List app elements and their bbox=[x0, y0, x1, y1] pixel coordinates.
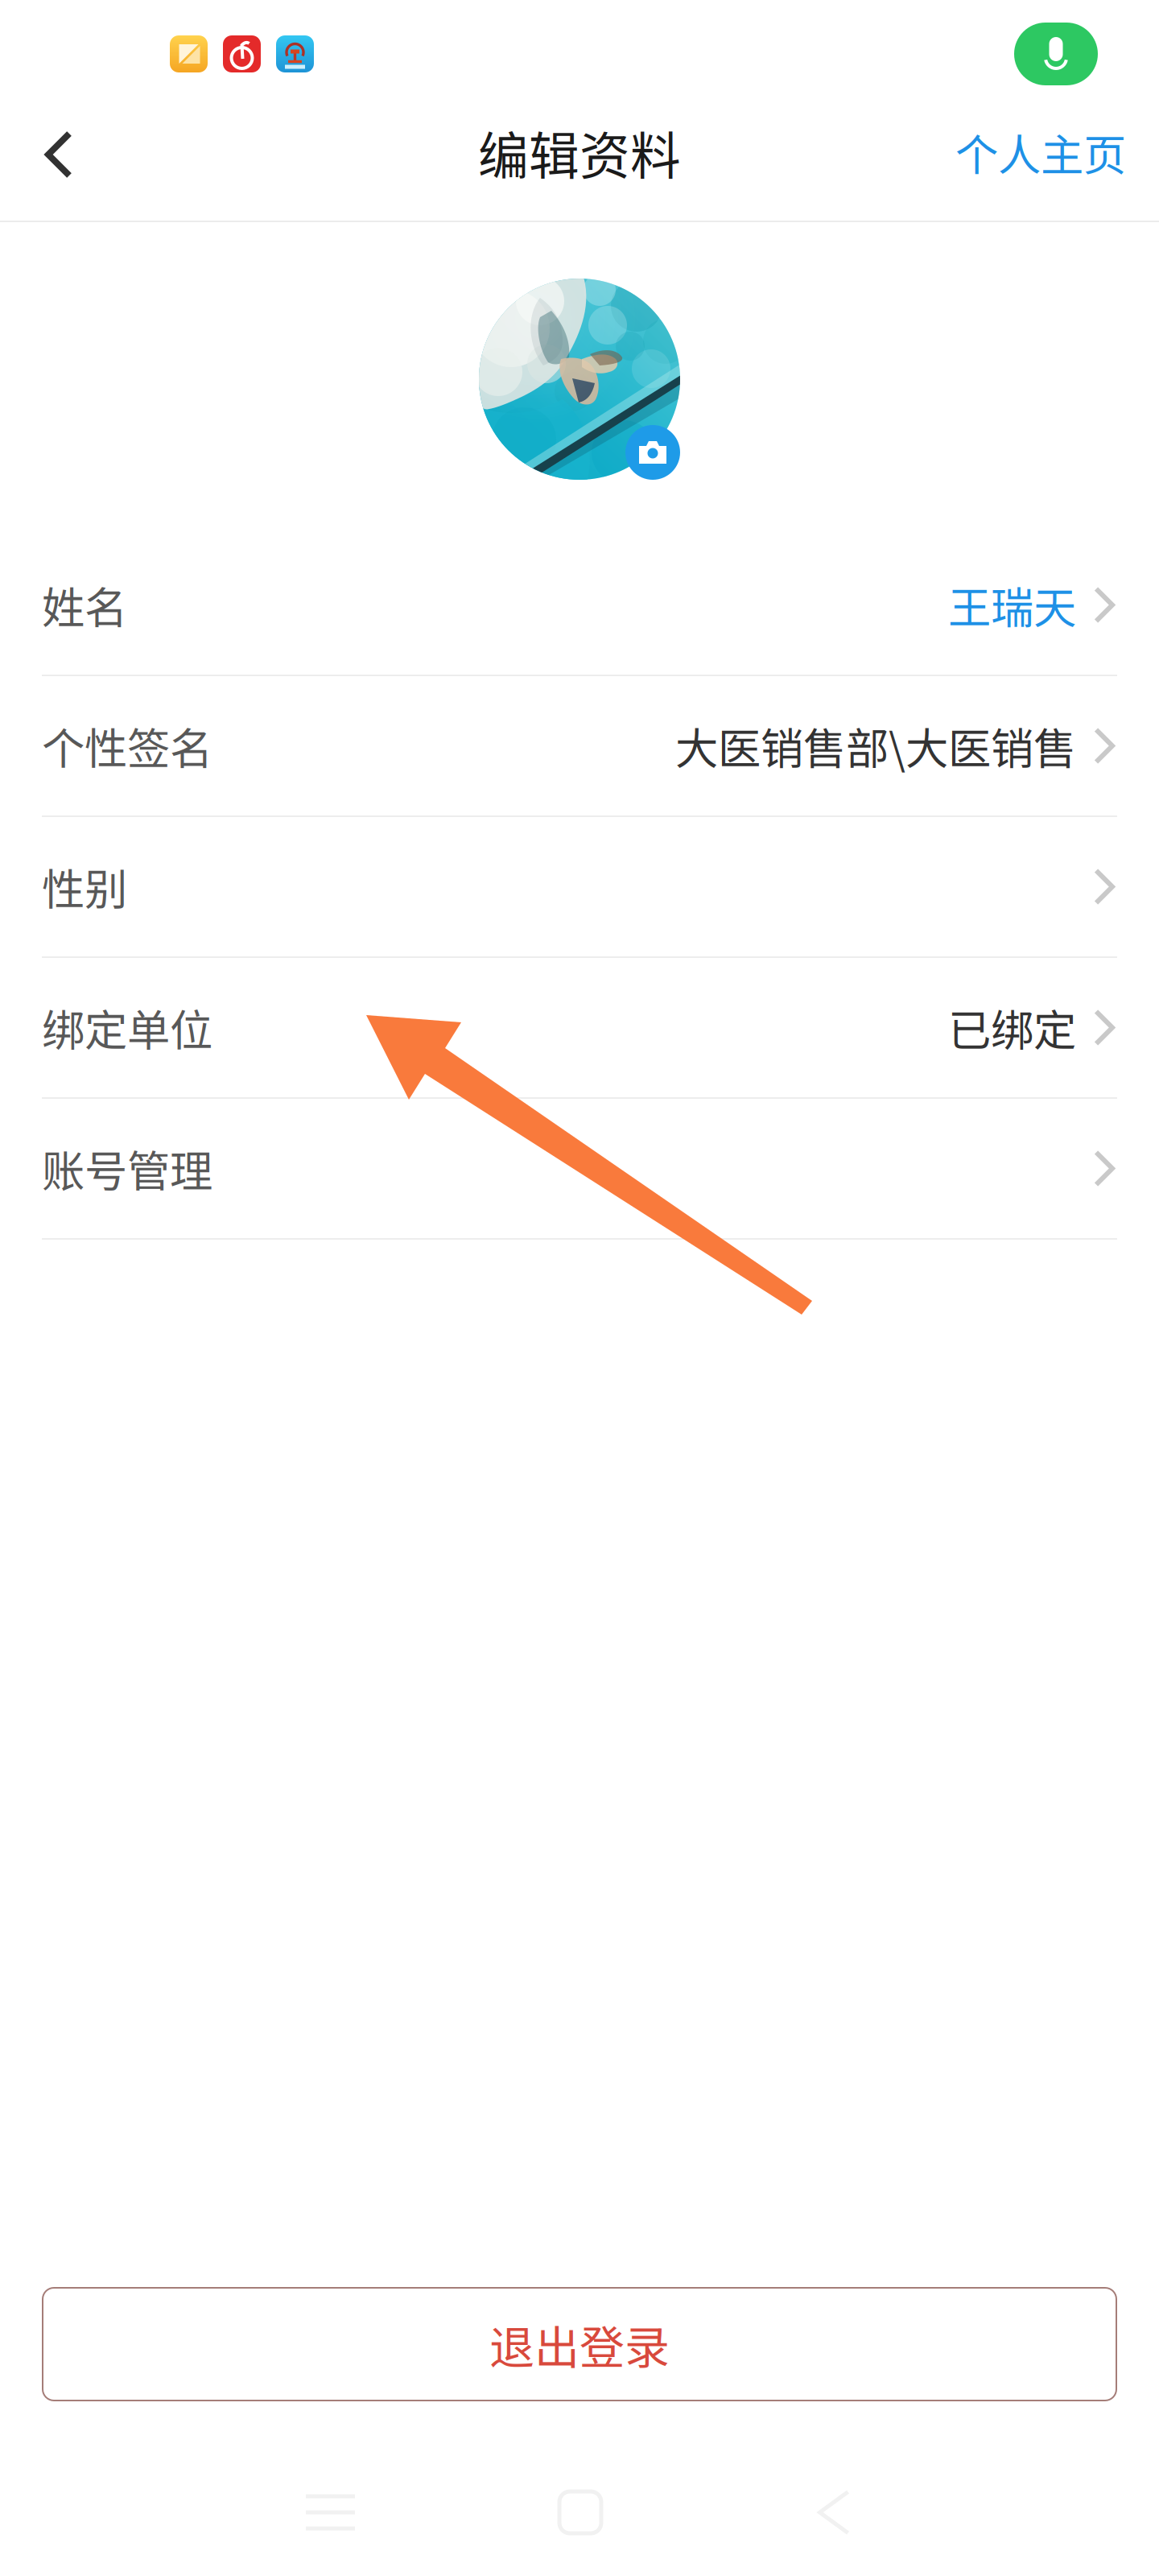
staticText: 退出登录 bbox=[489, 2312, 670, 2377]
button[interactable]: 绑定单位 bbox=[0, 958, 1159, 1097]
staticText: 姓名 bbox=[42, 574, 127, 636]
button[interactable]: Recents bbox=[306, 2490, 355, 2535]
staticText: 已绑定 bbox=[948, 997, 1076, 1059]
staticText: 编辑资料 bbox=[478, 116, 681, 189]
staticText: 账号管理 bbox=[42, 1137, 212, 1200]
staticText: 大医销售部\大医销售 bbox=[675, 715, 1076, 777]
button[interactable]: 退出登录 bbox=[43, 2288, 1116, 2401]
button[interactable]: 个性签名 bbox=[0, 676, 1159, 815]
button[interactable]: 账号管理 bbox=[0, 1099, 1159, 1238]
staticText: 个人主页 bbox=[955, 121, 1126, 183]
button[interactable]: 姓名 bbox=[0, 535, 1159, 675]
staticText: 性别 bbox=[42, 856, 127, 918]
staticText: 绑定单位 bbox=[42, 997, 212, 1059]
button[interactable]: Back bbox=[818, 2490, 850, 2535]
button[interactable]: 返回 / Back bbox=[0, 105, 108, 215]
staticText: 王瑞天 bbox=[948, 574, 1076, 636]
staticText: 个性签名 bbox=[42, 715, 212, 777]
button[interactable]: 性别 bbox=[0, 817, 1159, 956]
button[interactable]: 更换头像 / Change photo bbox=[479, 279, 680, 480]
button[interactable]: 个人主页 bbox=[923, 97, 1159, 223]
button[interactable]: Home bbox=[559, 2491, 601, 2533]
